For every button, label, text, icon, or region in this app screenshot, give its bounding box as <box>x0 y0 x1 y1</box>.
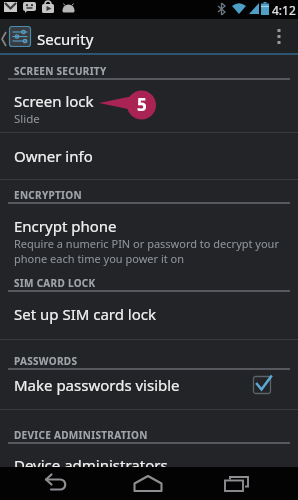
staticText: phone each time you power it on <box>14 251 185 266</box>
staticText: ENCRYPTION <box>14 188 82 202</box>
button[interactable]: Make passwords visible <box>0 375 298 421</box>
staticText: 4:12 <box>272 2 296 18</box>
staticText: Encrypt phone <box>14 216 117 236</box>
staticText: Owner info <box>14 146 93 166</box>
staticText: Device administrators <box>14 455 168 475</box>
button[interactable]: Device administrators <box>0 455 298 500</box>
button[interactable] <box>266 19 298 53</box>
staticText: SCREEN SECURITY <box>14 64 107 78</box>
staticText: PASSWORDS <box>14 354 78 368</box>
staticText: 5 <box>137 93 147 116</box>
button[interactable]: Owner info <box>0 146 298 192</box>
staticText: Require a numeric PIN or password to dec… <box>14 236 279 251</box>
button[interactable] <box>123 467 173 500</box>
staticText: Screen lock <box>14 91 94 111</box>
staticText: Slide <box>14 111 40 127</box>
staticText: Security <box>37 29 94 49</box>
staticText: Set up SIM card lock <box>14 304 157 324</box>
button[interactable]: Encrypt phone <box>0 216 298 266</box>
button[interactable]: Set up SIM card lock <box>0 304 298 350</box>
staticText: Make passwords visible <box>14 375 180 395</box>
staticText: SIM CARD LOCK <box>14 276 96 290</box>
staticText: DEVICE ADMINISTRATION <box>14 428 148 442</box>
button[interactable] <box>211 467 261 500</box>
button[interactable]: Screen lock <box>0 91 298 137</box>
button[interactable] <box>31 467 81 500</box>
